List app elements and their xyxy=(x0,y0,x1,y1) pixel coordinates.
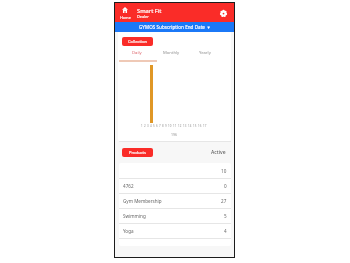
staticText: 13 xyxy=(183,124,187,128)
staticText: Swimming xyxy=(123,213,146,219)
staticText: 15 xyxy=(193,124,197,128)
button[interactable]: Swimming xyxy=(119,209,231,223)
staticText: 3 xyxy=(147,124,149,128)
staticText: 5 xyxy=(224,213,227,219)
staticText: GYMOS Subscription End Date ▾ xyxy=(139,24,210,30)
staticText: 196 xyxy=(171,132,178,137)
staticText: Smart Fit xyxy=(137,7,162,15)
staticText: 4762 xyxy=(123,183,134,189)
staticText: 8 xyxy=(162,124,164,128)
staticText: 9 xyxy=(165,124,167,128)
staticText: Products xyxy=(129,150,147,156)
button[interactable]: Products xyxy=(122,148,153,157)
staticText: 11 xyxy=(173,124,177,128)
staticText: 4 xyxy=(224,228,227,234)
staticText: Gym Membership xyxy=(123,198,162,204)
staticText: Monthly xyxy=(163,50,180,56)
staticText: 10 xyxy=(168,124,172,128)
staticText: Collection xyxy=(128,39,147,45)
button[interactable]: Home xyxy=(118,6,136,21)
button[interactable]: Collection xyxy=(122,37,153,46)
staticText: Dealer xyxy=(137,14,149,19)
button[interactable]: Settings xyxy=(216,6,230,20)
button[interactable]: GYMOS Subscription End Date ▾ xyxy=(114,22,235,32)
button[interactable]: Gym Membership xyxy=(119,194,231,208)
button[interactable]: Daily xyxy=(120,48,154,57)
staticText: 7 xyxy=(159,124,161,128)
staticText: Yoga xyxy=(123,228,134,234)
button[interactable]: 10 xyxy=(119,163,231,178)
button[interactable]: Yoga xyxy=(119,224,231,238)
button[interactable]: 4762 xyxy=(119,179,231,193)
button[interactable]: Yearly xyxy=(188,48,222,57)
staticText: 10 xyxy=(221,168,227,174)
staticText: 4 xyxy=(150,124,152,128)
staticText: 1 xyxy=(141,124,143,128)
staticText: 12 xyxy=(178,124,182,128)
staticText: 27 xyxy=(221,198,227,204)
staticText: Daily xyxy=(132,50,142,56)
button[interactable]: Monthly xyxy=(154,48,188,57)
staticText: Home xyxy=(120,15,131,20)
staticText: 2 xyxy=(144,124,146,128)
staticText: 17 xyxy=(203,124,207,128)
staticText: Active xyxy=(211,149,226,156)
staticText: 6 xyxy=(156,124,158,128)
staticText: 5 xyxy=(153,124,155,128)
staticText: 14 xyxy=(188,124,192,128)
staticText: 0 xyxy=(224,183,227,189)
staticText: 16 xyxy=(198,124,202,128)
staticText: Yearly xyxy=(199,50,211,56)
